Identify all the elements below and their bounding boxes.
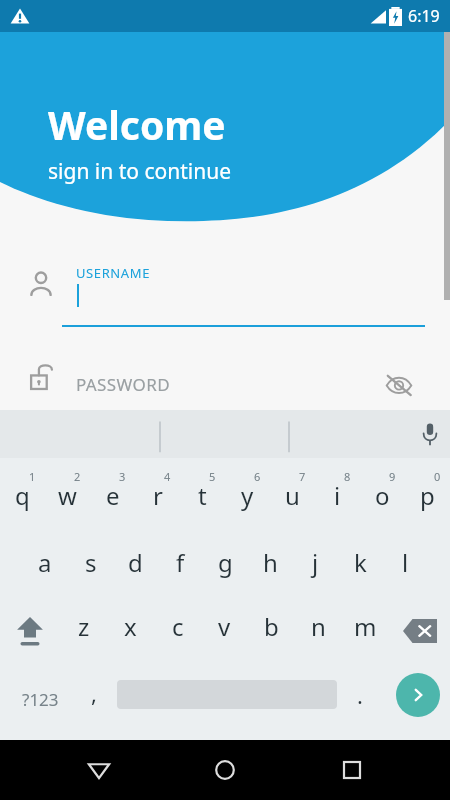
staticText: sign in to continue	[48, 157, 231, 186]
staticText: k	[354, 546, 367, 579]
button[interactable]: 2	[45, 465, 90, 530]
staticText: 6:19	[408, 5, 440, 27]
button[interactable]: 0	[405, 465, 450, 530]
staticText: Welcome	[48, 98, 226, 151]
staticText: p	[420, 479, 435, 512]
button[interactable]: s	[68, 532, 113, 592]
button[interactable]: j	[293, 532, 338, 592]
button[interactable]: f	[158, 532, 203, 592]
button[interactable]: 9	[360, 465, 405, 530]
staticText: t	[198, 479, 207, 512]
button[interactable]: Shift	[0, 600, 60, 662]
staticText: i	[334, 479, 341, 512]
button[interactable]: Backspace	[389, 600, 450, 662]
button[interactable]: Back	[71, 742, 127, 798]
staticText: 4	[164, 469, 171, 484]
staticText: h	[263, 546, 278, 579]
button[interactable]: 1	[0, 465, 45, 530]
staticText: j	[312, 546, 319, 579]
staticText: 3	[119, 469, 126, 484]
button[interactable]: 8	[315, 465, 360, 530]
staticText: y	[241, 479, 254, 512]
button[interactable]: m	[342, 600, 389, 662]
staticText: l	[402, 546, 409, 579]
staticText: z	[78, 610, 90, 643]
staticText: ?123	[22, 688, 59, 711]
button[interactable]: l	[383, 532, 428, 592]
staticText: d	[128, 546, 143, 579]
staticText: x	[124, 610, 137, 643]
other: Username	[28, 271, 54, 297]
button[interactable]: v	[201, 600, 248, 662]
staticText: r	[153, 479, 163, 512]
staticText: s	[85, 546, 97, 579]
button[interactable]: 6	[225, 465, 270, 530]
staticText: g	[218, 546, 233, 579]
staticText: 1	[29, 469, 36, 484]
staticText: v	[218, 610, 231, 643]
button[interactable]: k	[338, 532, 383, 592]
button[interactable]: a	[22, 532, 68, 592]
button[interactable]: Home	[197, 742, 253, 798]
button[interactable]: d	[113, 532, 158, 592]
other: Show password	[385, 374, 413, 396]
staticText: USERNAME	[76, 264, 150, 282]
button[interactable]: 7	[270, 465, 315, 530]
staticText: ,	[91, 678, 97, 708]
button[interactable]: ,	[74, 668, 114, 730]
staticText: q	[15, 479, 30, 512]
staticText: c	[172, 610, 184, 643]
staticText: e	[106, 479, 120, 512]
button[interactable]: Voice input	[422, 422, 438, 446]
button[interactable]: 5	[180, 465, 225, 530]
staticText: 6	[254, 469, 261, 484]
button[interactable]: h	[248, 532, 293, 592]
button[interactable]: Recents	[324, 742, 380, 798]
button[interactable]: z	[60, 600, 107, 662]
staticText: u	[285, 479, 300, 512]
staticText: 0	[434, 469, 441, 484]
staticText: m	[354, 610, 377, 643]
staticText: PASSWORD	[76, 373, 171, 396]
button[interactable]: .	[340, 668, 380, 730]
button[interactable]: c	[154, 600, 201, 662]
button[interactable]: Enter	[396, 673, 440, 717]
staticText: 5	[209, 469, 216, 484]
button[interactable]: ?123	[6, 668, 74, 730]
button[interactable]: n	[295, 600, 342, 662]
button[interactable]: 4	[135, 465, 180, 530]
button[interactable]: b	[248, 600, 295, 662]
staticText: n	[311, 610, 326, 643]
button[interactable]: x	[107, 600, 154, 662]
staticText: 2	[74, 469, 81, 484]
button[interactable]: Username	[0, 255, 450, 335]
staticText: o	[375, 479, 390, 512]
staticText: .	[357, 680, 363, 710]
staticText: 8	[344, 469, 351, 484]
button[interactable]: 3	[90, 465, 135, 530]
staticText: a	[38, 546, 52, 579]
staticText: 7	[299, 469, 306, 484]
button[interactable]: g	[203, 532, 248, 592]
staticText: 9	[389, 469, 396, 484]
staticText: f	[176, 546, 185, 579]
button[interactable]: PASSWORD	[0, 352, 450, 410]
staticText: b	[264, 610, 279, 643]
staticText: w	[58, 479, 77, 512]
